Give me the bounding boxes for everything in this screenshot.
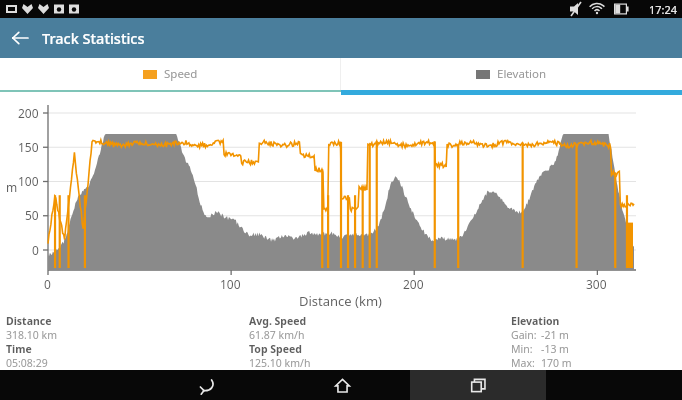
staticText: 125.10 km/h (249, 356, 311, 370)
staticText: -21 m (541, 328, 569, 342)
staticText: 100 (220, 276, 241, 292)
staticText: Time (6, 342, 32, 356)
staticText: Min: (511, 342, 533, 356)
staticText: 17:24 (649, 2, 678, 17)
button[interactable]: Home (274, 370, 410, 400)
button[interactable]: Back (137, 370, 274, 400)
button[interactable]: Speed (0, 58, 340, 90)
staticText: 100 (18, 173, 39, 189)
staticText: -13 m (541, 342, 569, 356)
button[interactable]: Back (0, 18, 40, 58)
staticText: 61.87 km/h (249, 328, 305, 342)
staticText: 50 (25, 207, 39, 223)
staticText: Elevation (497, 66, 547, 82)
staticText: Gain: (511, 328, 537, 342)
staticText: Speed (164, 66, 198, 82)
staticText: Distance (km) (299, 292, 382, 310)
staticText: 150 (18, 139, 39, 155)
staticText: 200 (403, 276, 424, 292)
staticText: Max: (511, 356, 535, 370)
staticText: 318.10 km (6, 328, 57, 342)
staticText: Track Statistics (42, 28, 145, 48)
staticText: 170 m (541, 356, 572, 370)
button[interactable]: Recent apps (410, 370, 546, 400)
staticText: 0 (32, 242, 39, 258)
staticText: Distance (6, 314, 52, 328)
staticText: Elevation (511, 314, 560, 328)
staticText: 200 (18, 105, 39, 121)
staticText: 05:08:29 (6, 356, 48, 370)
staticText: m (6, 179, 18, 195)
staticText: Top Speed (249, 342, 302, 356)
button[interactable]: Elevation (341, 58, 682, 90)
staticText: Avg. Speed (249, 314, 307, 328)
staticText: 0 (44, 276, 51, 292)
staticText: 300 (586, 276, 607, 292)
